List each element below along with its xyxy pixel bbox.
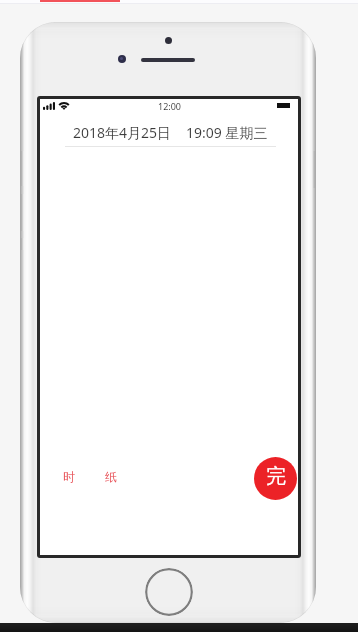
staticText: 完 bbox=[266, 464, 286, 489]
staticText: 时 bbox=[63, 469, 75, 484]
staticText: 2018年4月25日 bbox=[73, 123, 172, 142]
button[interactable]: 纸 bbox=[102, 466, 120, 487]
button[interactable]: 时 bbox=[60, 466, 78, 487]
staticText: 19:09 星期三 bbox=[186, 123, 268, 142]
staticText: 12:00 bbox=[158, 100, 182, 112]
staticText: 纸 bbox=[105, 469, 117, 484]
button[interactable]: 完 bbox=[254, 457, 297, 500]
